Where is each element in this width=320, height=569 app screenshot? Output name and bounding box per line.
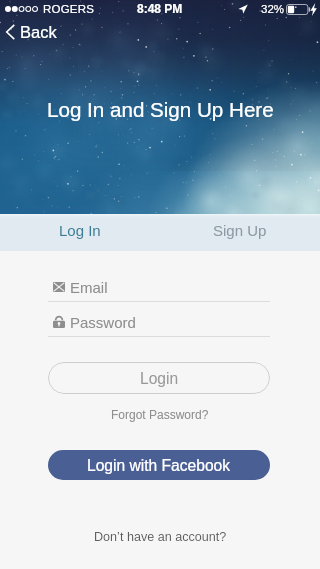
button[interactable]: Login [48,362,270,394]
staticText: Log In and Sign Up Here [47,98,274,121]
button[interactable]: Back [3,21,60,43]
staticText: Login [140,370,179,387]
button[interactable]: Email [48,276,270,298]
staticText: Login with Facebook [87,457,231,474]
staticText: Back [20,23,57,41]
staticText: 8:48 PM [137,2,183,15]
staticText: Email [70,279,108,296]
button[interactable]: Don’t have an account? [94,530,227,544]
button[interactable]: Password [48,311,270,333]
staticText: Log In [59,222,101,239]
button[interactable]: Sign Up [160,212,320,249]
staticText: ROGERS [43,3,95,16]
staticText: 32% [261,3,285,16]
staticText: Sign Up [213,222,267,239]
button[interactable]: Forgot Password? [111,408,209,421]
button[interactable]: Log In [0,212,160,249]
staticText: Password [70,314,136,331]
button[interactable]: Login with Facebook [48,450,270,480]
